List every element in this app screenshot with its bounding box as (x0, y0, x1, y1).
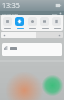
button[interactable]: Flashlight (40, 17, 49, 26)
staticText: NO SIM CARD (2, 12, 19, 15)
staticText: 13:35 (2, 1, 20, 11)
button[interactable]: Auto-rotate (52, 17, 61, 26)
button[interactable]: Do not disturb (28, 17, 37, 26)
button[interactable]: Bluetooth (15, 17, 24, 26)
button[interactable] (2, 43, 62, 56)
button[interactable]: Wi-Fi (3, 17, 12, 26)
button[interactable]: Brightness (1, 32, 63, 38)
staticText: EDIT (52, 12, 58, 15)
